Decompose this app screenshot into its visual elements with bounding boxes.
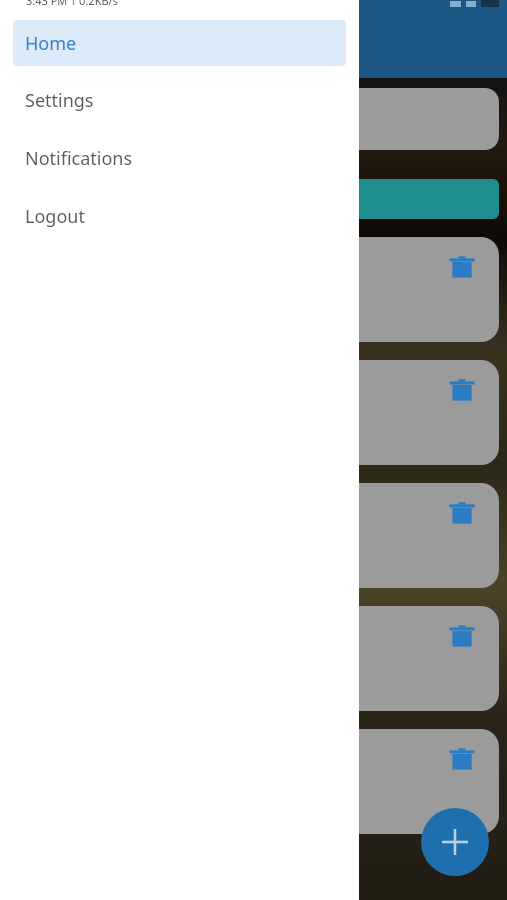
- staticText: Logout: [25, 204, 85, 229]
- button[interactable]: Delete Macaroon: [445, 374, 479, 408]
- staticText: 3:43 PM | 0.2KB/s: [26, 0, 118, 5]
- button[interactable]: Delete Duckegg: [445, 497, 479, 531]
- button[interactable]: Notifications: [13, 135, 346, 181]
- staticText: Settings: [25, 88, 94, 113]
- button[interactable]: Add item: [421, 808, 489, 876]
- button[interactable]: [10, 88, 499, 150]
- button[interactable]: Delete Macaroon: [10, 606, 499, 711]
- button[interactable]: Delete Cashew: [445, 743, 479, 777]
- button[interactable]: Delete Macaroon: [10, 360, 499, 465]
- button[interactable]: Settings: [13, 77, 346, 123]
- button[interactable]: Swipe to delete an item.: [10, 179, 499, 219]
- staticText: Notifications: [25, 146, 133, 171]
- button[interactable]: Logout: [13, 193, 346, 239]
- button[interactable]: Delete Duckegg: [445, 251, 479, 285]
- button[interactable]: Delete Macaroon: [445, 620, 479, 654]
- button[interactable]: Home: [13, 20, 346, 66]
- button[interactable]: Delete Duckegg: [10, 483, 499, 588]
- button[interactable]: Delete Duckegg: [10, 237, 499, 342]
- button[interactable]: Delete Cashew: [10, 729, 499, 834]
- staticText: Home: [25, 31, 77, 56]
